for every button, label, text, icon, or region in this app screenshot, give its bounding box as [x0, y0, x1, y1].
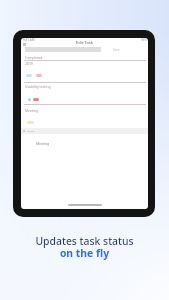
staticText: Save [113, 48, 120, 52]
staticText: Meeting [25, 108, 39, 113]
staticText: on the fly [0, 246, 169, 260]
staticText: 2019 [25, 61, 33, 66]
button[interactable]: Tag [26, 74, 32, 77]
button[interactable]: Tag [33, 98, 39, 101]
staticText: Usability testing [25, 84, 51, 89]
staticText: Completed [25, 55, 43, 60]
staticText: Updates task status [0, 234, 169, 248]
button[interactable]: Tag [27, 121, 34, 124]
staticText: 98% [141, 38, 147, 42]
staticText: Meeting [36, 141, 50, 146]
staticText: 9:41 AM [23, 38, 35, 42]
staticText: Edit Task [21, 40, 148, 45]
button[interactable]: Tag [36, 74, 42, 77]
button[interactable]: Tag [28, 98, 31, 101]
